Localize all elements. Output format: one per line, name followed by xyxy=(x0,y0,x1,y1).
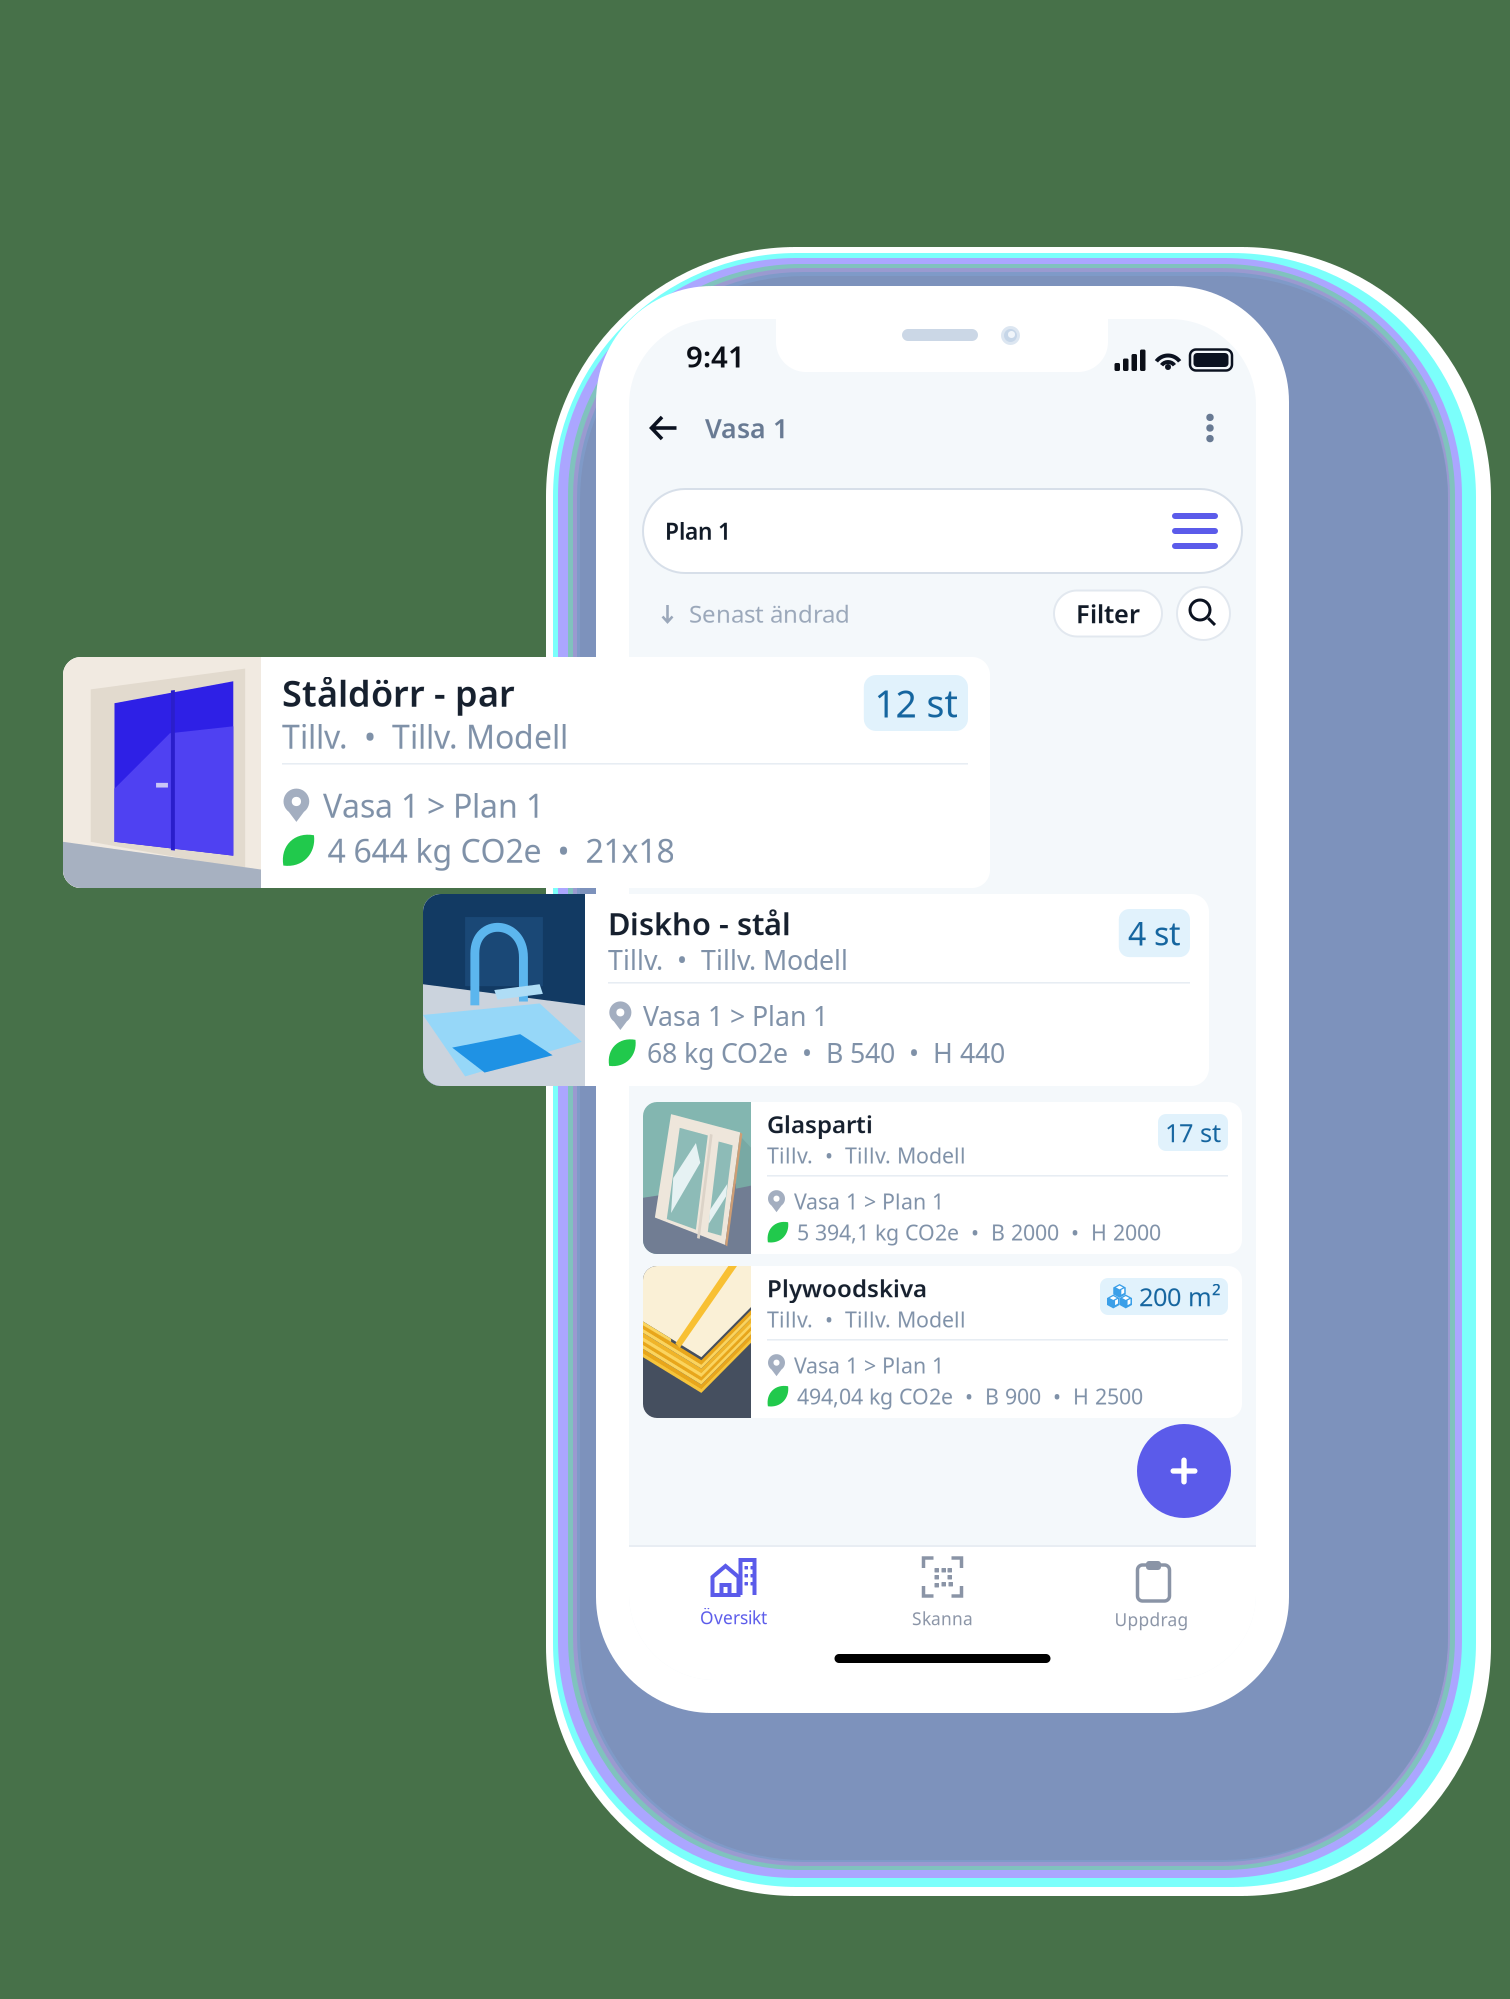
button[interactable]: Skanna xyxy=(838,1547,1047,1639)
staticText: 12 st xyxy=(874,678,957,728)
button[interactable]: Mer xyxy=(1192,401,1228,455)
staticText: Tillv. • Tillv. Modell xyxy=(767,1141,966,1169)
staticText: Glasparti xyxy=(767,1108,873,1140)
staticText: 9:41 xyxy=(686,336,745,375)
button[interactable]: Senast ändrad xyxy=(660,588,850,639)
staticText: 4 st xyxy=(1128,912,1181,954)
staticText: Tillv. • Tillv. Modell xyxy=(767,1305,966,1333)
button[interactable]: Sök xyxy=(1177,587,1230,640)
staticText: 5 394,1 kg CO2e • B 2000 • H 2000 xyxy=(797,1218,1161,1246)
staticText: Plywoodskiva xyxy=(767,1272,927,1304)
button[interactable]: Filter xyxy=(1054,590,1162,636)
staticText: 200 m² xyxy=(1139,1280,1221,1313)
staticText: Tillv. • Tillv. Modell xyxy=(282,715,568,757)
staticText: Diskho - stål xyxy=(608,903,791,944)
button[interactable]: Plan 1 xyxy=(643,489,1242,573)
staticText: Vasa 1 > Plan 1 xyxy=(794,1187,944,1215)
staticText: Ståldörr - par xyxy=(282,669,515,717)
staticText: Uppdrag xyxy=(1114,1608,1188,1631)
button[interactable]: Uppdrag xyxy=(1047,1547,1256,1639)
staticText: Skanna xyxy=(912,1607,973,1630)
staticText: Vasa 1 xyxy=(705,410,788,446)
staticText: Tillv. • Tillv. Modell xyxy=(608,942,848,977)
staticText: Vasa 1 > Plan 1 xyxy=(794,1351,944,1379)
staticText: Översikt xyxy=(700,1606,767,1629)
staticText: Vasa 1 > Plan 1 xyxy=(323,784,544,826)
button[interactable]: Tillbaka xyxy=(645,395,697,460)
staticText: Plan 1 xyxy=(665,516,731,546)
staticText: Filter xyxy=(1076,597,1140,630)
staticText: 17 st xyxy=(1165,1116,1221,1149)
button[interactable]: Vasa 1 xyxy=(697,394,800,462)
staticText: Vasa 1 > Plan 1 xyxy=(643,998,828,1033)
button[interactable]: Glasparti xyxy=(643,1102,1242,1254)
staticText: 494,04 kg CO2e • B 900 • H 2500 xyxy=(797,1382,1143,1410)
staticText: Senast ändrad xyxy=(689,598,850,629)
button[interactable]: Plywoodskiva xyxy=(643,1266,1242,1418)
button[interactable]: Översikt xyxy=(629,1547,838,1639)
staticText: 4 644 kg CO2e • 21x18 xyxy=(327,829,674,871)
staticText: 68 kg CO2e • B 540 • H 440 xyxy=(647,1035,1005,1070)
button[interactable]: Lägg till xyxy=(1137,1424,1231,1518)
